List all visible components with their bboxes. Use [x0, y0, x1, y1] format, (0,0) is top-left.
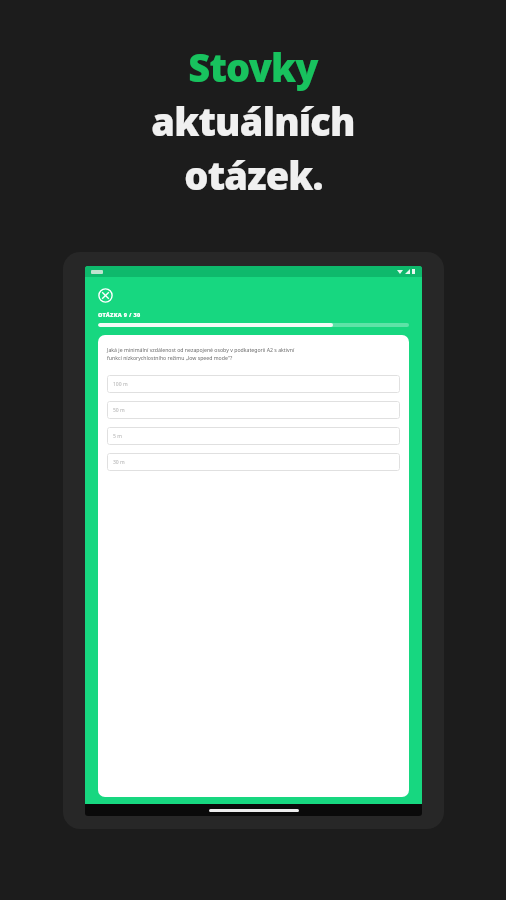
button[interactable]: 100 m — [107, 375, 400, 393]
button[interactable]: 50 m — [107, 401, 400, 419]
button[interactable]: 5 m — [107, 427, 400, 445]
staticText: OTÁZKA 9 / 30 — [98, 311, 141, 318]
staticText: funkcí nízkorychlostního režimu „low spe… — [107, 354, 233, 361]
staticText: aktuálních — [151, 95, 355, 147]
staticText: 5 m — [113, 433, 122, 440]
staticText: 30 m — [113, 459, 125, 466]
staticText: otázek. — [184, 149, 323, 201]
button[interactable]: Zavřít — [98, 288, 113, 303]
staticText: 50 m — [113, 407, 125, 414]
staticText: Stovky — [188, 41, 318, 93]
staticText: Jaká je minimální vzdálenost od nezapoje… — [107, 346, 295, 353]
staticText: 100 m — [113, 381, 128, 388]
button[interactable]: 30 m — [107, 453, 400, 471]
